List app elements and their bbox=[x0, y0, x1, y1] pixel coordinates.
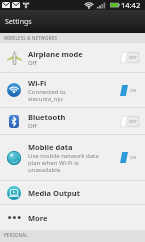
staticText: Connected to siecunia_nju bbox=[28, 88, 66, 103]
staticText: More bbox=[28, 213, 48, 223]
button[interactable]: On bbox=[120, 152, 139, 163]
button[interactable]: Media Output bbox=[0, 181, 145, 204]
staticText: ON bbox=[130, 155, 137, 161]
staticText: Settings bbox=[5, 17, 32, 27]
staticText: WIRELESS & NETWORKS bbox=[4, 35, 58, 41]
staticText: Wi-Fi bbox=[28, 78, 47, 88]
staticText: Media Output bbox=[28, 188, 80, 198]
staticText: Use mobile network data plan when Wi-Fi … bbox=[28, 152, 99, 174]
button[interactable]: More bbox=[0, 205, 145, 230]
button[interactable]: On bbox=[120, 85, 139, 96]
staticText: Off bbox=[28, 59, 37, 67]
staticText: Airplane mode bbox=[28, 49, 83, 59]
staticText: ON bbox=[130, 88, 137, 94]
button[interactable]: Off bbox=[120, 52, 139, 63]
staticText: OFF bbox=[129, 55, 137, 61]
button[interactable]: Mobile data bbox=[0, 135, 145, 180]
staticText: Bluetooth bbox=[28, 112, 66, 122]
staticText: PERSONAL bbox=[4, 232, 28, 238]
button[interactable]: Airplane mode bbox=[0, 43, 145, 72]
button[interactable]: Off bbox=[120, 116, 139, 127]
staticText: 14:42 bbox=[121, 0, 141, 10]
staticText: OFF bbox=[129, 119, 137, 125]
button[interactable]: Wi-Fi bbox=[0, 73, 145, 107]
staticText: Mobile data bbox=[28, 142, 73, 152]
button[interactable]: Bluetooth bbox=[0, 108, 145, 134]
staticText: Off bbox=[28, 122, 37, 130]
